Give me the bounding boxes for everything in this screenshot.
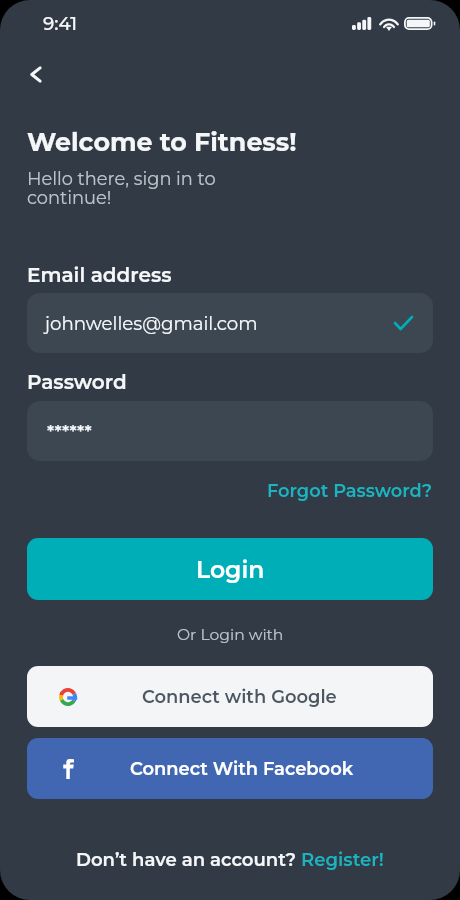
staticText: Welcome to Fitness! xyxy=(27,127,297,158)
staticText: ****** xyxy=(47,420,92,441)
staticText: Connect with Google xyxy=(142,686,337,708)
button[interactable]: Login xyxy=(27,538,433,600)
staticText: Or Login with xyxy=(177,625,284,644)
staticText: Password xyxy=(27,370,127,394)
staticText: Email address xyxy=(27,263,172,287)
staticText: Hello there, sign in to continue! xyxy=(27,168,216,208)
button[interactable]: ****** xyxy=(27,401,433,461)
button[interactable]: Back xyxy=(21,60,50,89)
staticText: Connect With Facebook xyxy=(130,758,354,780)
staticText: Login xyxy=(196,555,265,584)
staticText: 9:41 xyxy=(43,12,77,34)
button[interactable]: Connect with Google xyxy=(27,666,433,727)
button[interactable]: Don’t have an account? Register! xyxy=(76,848,384,870)
button[interactable]: Connect With Facebook xyxy=(27,738,433,799)
button[interactable]: Forgot Password? xyxy=(267,480,460,502)
staticText: johnwelles@gmail.com xyxy=(45,312,258,334)
button[interactable]: johnwelles@gmail.com xyxy=(27,293,433,353)
